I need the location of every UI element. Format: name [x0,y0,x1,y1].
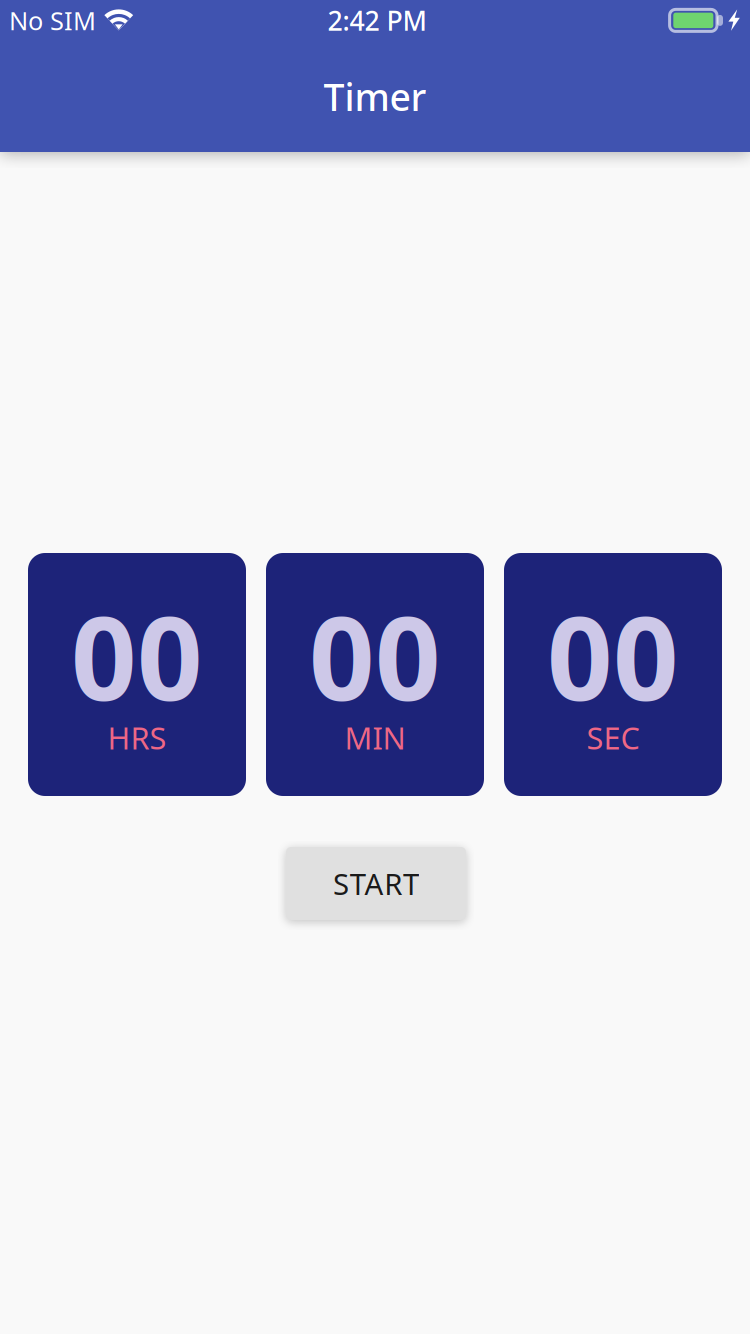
staticText: Timer [323,72,426,121]
button[interactable]: START [286,847,466,920]
button[interactable]: SEC 00 [504,553,722,796]
staticText: No SIM [9,4,96,37]
staticText: 00 [71,580,203,732]
staticText: START [333,864,419,903]
staticText: SEC [586,717,639,758]
button[interactable]: MIN 00 [266,553,484,796]
staticText: 00 [309,580,441,732]
staticText: 00 [547,580,679,732]
staticText: MIN [344,717,405,758]
staticText: 2:42 PM [327,3,426,38]
button[interactable]: HRS 00 [28,553,246,796]
staticText: HRS [107,717,166,758]
